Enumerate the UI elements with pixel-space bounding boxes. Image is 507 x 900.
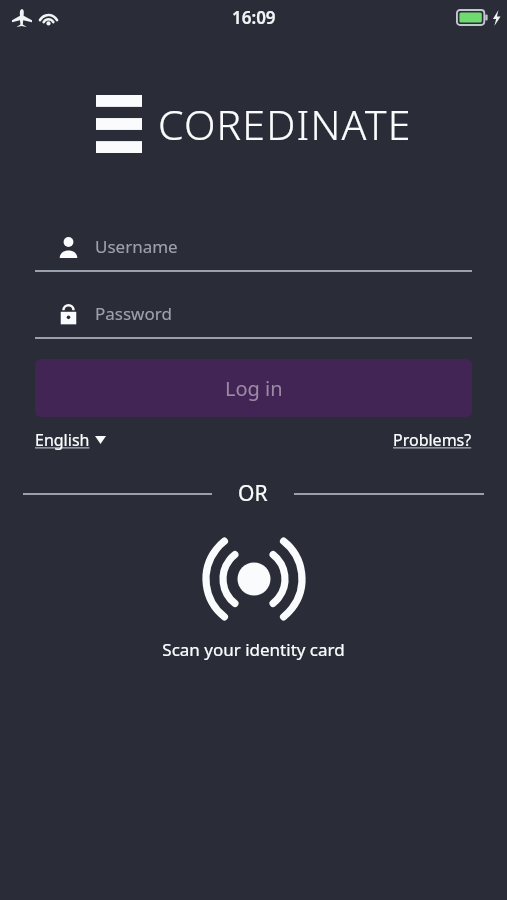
button[interactable]: Problems? xyxy=(393,429,472,451)
button[interactable]: Log in xyxy=(35,359,472,417)
staticText: Username xyxy=(95,235,178,258)
staticText: Password xyxy=(95,302,172,325)
staticText: Problems? xyxy=(393,429,472,451)
staticText: OR xyxy=(238,479,268,508)
staticText: Log in xyxy=(225,375,283,402)
staticText: Scan your identity card xyxy=(162,638,345,661)
staticText: English xyxy=(35,429,90,451)
button[interactable]: English xyxy=(35,429,106,451)
button[interactable]: Scan your identity card xyxy=(0,540,507,661)
staticText: 16:09 xyxy=(232,6,276,29)
button[interactable]: Username xyxy=(35,223,472,272)
button[interactable]: Password xyxy=(35,290,472,339)
staticText: COREDINATE xyxy=(158,96,412,152)
